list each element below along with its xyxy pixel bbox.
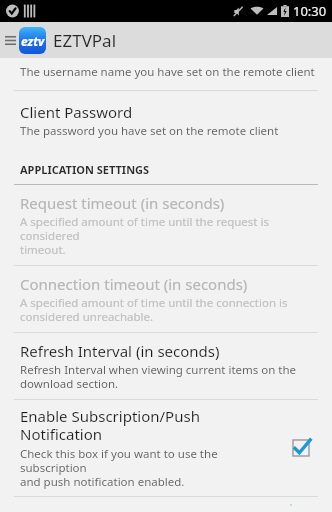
staticText: Refresh Interval (in seconds) xyxy=(20,341,220,361)
button[interactable]: Request timeout (in seconds) xyxy=(0,185,332,265)
button[interactable]: Refresh Interval (in seconds) xyxy=(0,333,332,399)
button[interactable]: Menu xyxy=(2,26,18,54)
staticText: Refresh Interval when viewing current it… xyxy=(20,362,297,391)
staticText: A specified amount of time until the con… xyxy=(20,295,288,324)
staticText: The username name you have set on the re… xyxy=(20,64,315,80)
staticText: Connection timeout (in seconds) xyxy=(20,274,248,294)
staticText: APPLICATION SETTINGS xyxy=(20,162,150,177)
button[interactable]: Client Password xyxy=(0,91,332,151)
staticText: Request timeout (in seconds) xyxy=(20,193,225,213)
button[interactable]: Enable Subscription/Push Notification xyxy=(0,400,332,496)
staticText: A specified amount of time until the req… xyxy=(20,214,318,257)
staticText: Client Password xyxy=(20,102,133,122)
button[interactable]: Enable Subscription/Push Notification xyxy=(284,431,318,465)
staticText: Check this box if you want to use the su… xyxy=(20,446,274,489)
staticText: EZTVPal xyxy=(53,29,117,52)
staticText: The password you have set on the remote … xyxy=(20,123,279,139)
staticText: 10:30 xyxy=(293,2,327,20)
button[interactable]: Connection timeout (in seconds) xyxy=(0,266,332,332)
button[interactable]: The username name you have set on the re… xyxy=(0,58,332,90)
staticText: Enable Subscription/Push Notification xyxy=(20,406,274,445)
staticText: eztv xyxy=(21,33,45,49)
